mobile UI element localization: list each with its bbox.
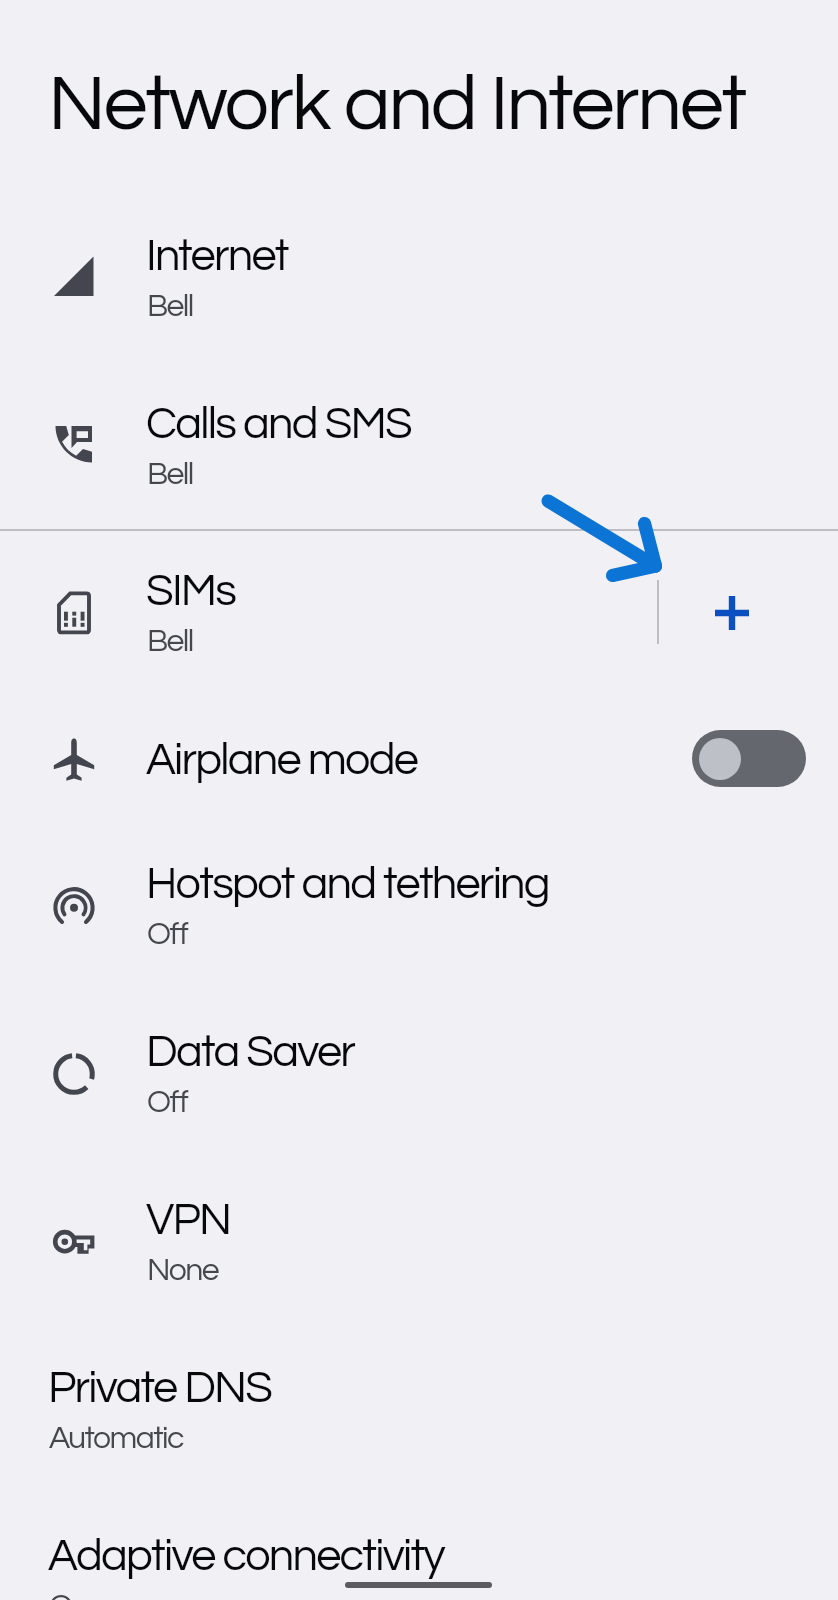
staticText: Bell [147,458,193,491]
button[interactable]: Internet [0,197,838,354]
staticText: None [147,1254,219,1287]
staticText: VPN [146,1197,231,1243]
staticText: Off [147,1086,188,1119]
staticText: Network and Internet [48,64,745,145]
staticText: Airplane mode [146,737,417,783]
staticText: SIMs [146,568,236,614]
staticText: Bell [147,290,193,323]
staticText: Automatic [49,1422,183,1455]
staticText: Off [147,918,188,951]
staticText: Private DNS [48,1365,272,1411]
button[interactable]: Data Saver [0,993,838,1150]
button[interactable]: Add SIM [688,569,776,657]
button[interactable]: Airplane mode [0,701,838,788]
staticText: Calls and SMS [146,401,412,447]
staticText: Internet [146,233,288,279]
staticText: Bell [147,625,193,658]
staticText: Hotspot and tethering [146,861,549,907]
button[interactable]: Calls and SMS [0,365,838,522]
button[interactable]: Hotspot and tethering [0,825,838,982]
staticText: Data Saver [146,1029,355,1075]
button[interactable]: Airplane mode [692,730,806,787]
button[interactable]: Adaptive connectivity [0,1497,838,1600]
staticText: On [49,1590,88,1600]
button[interactable]: VPN [0,1161,838,1318]
button[interactable]: Private DNS [0,1329,838,1486]
button[interactable]: SIMs [0,532,838,689]
staticText: Adaptive connectivity [48,1533,444,1579]
